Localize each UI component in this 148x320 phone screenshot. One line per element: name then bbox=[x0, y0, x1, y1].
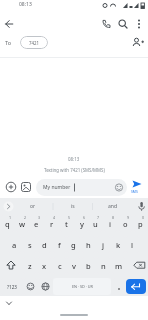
staticText: 3 bbox=[38, 215, 41, 220]
staticText: j bbox=[102, 240, 105, 250]
staticText: 9 bbox=[127, 215, 130, 220]
button[interactable] bbox=[126, 279, 146, 294]
button[interactable]: n bbox=[97, 257, 110, 274]
staticText: q bbox=[5, 219, 10, 229]
button[interactable] bbox=[135, 200, 148, 213]
button[interactable]: j bbox=[97, 236, 110, 253]
staticText: k bbox=[116, 240, 121, 250]
button[interactable]: i bbox=[104, 215, 117, 232]
staticText: v bbox=[72, 261, 76, 271]
staticText: d bbox=[42, 240, 47, 250]
staticText: 1 bbox=[9, 215, 12, 220]
button[interactable]: f bbox=[53, 236, 66, 253]
staticText: and bbox=[108, 203, 117, 210]
staticText: g bbox=[71, 240, 76, 250]
button[interactable] bbox=[2, 200, 15, 213]
button[interactable]: My number bbox=[36, 179, 127, 196]
staticText: p bbox=[138, 219, 143, 229]
button[interactable] bbox=[130, 257, 148, 274]
button[interactable]: l bbox=[126, 236, 139, 253]
staticText: 6 bbox=[83, 215, 86, 220]
staticText: is bbox=[71, 203, 75, 210]
button[interactable] bbox=[3, 298, 15, 308]
staticText: t bbox=[65, 219, 68, 229]
staticText: 0 bbox=[142, 215, 145, 220]
staticText: c bbox=[58, 261, 62, 271]
button[interactable] bbox=[1, 257, 21, 274]
staticText: Texting with 7421 (SMS/MMS) bbox=[44, 167, 105, 173]
staticText: y bbox=[80, 219, 84, 229]
button[interactable]: e bbox=[30, 215, 43, 232]
button[interactable]: z bbox=[23, 257, 36, 274]
staticText: or bbox=[30, 203, 36, 210]
staticText: 08:13 bbox=[19, 1, 32, 8]
button[interactable]: v bbox=[67, 257, 80, 274]
staticText: b bbox=[86, 261, 91, 271]
button[interactable]: t bbox=[60, 215, 73, 232]
button[interactable] bbox=[20, 181, 32, 193]
staticText: 8 bbox=[112, 215, 115, 220]
button[interactable]: p bbox=[134, 215, 147, 232]
button[interactable]: x bbox=[38, 257, 51, 274]
staticText: ?123 bbox=[7, 284, 17, 290]
button[interactable]: m bbox=[112, 257, 125, 274]
staticText: 2 bbox=[24, 215, 27, 220]
button[interactable]: g bbox=[67, 236, 80, 253]
button[interactable]: k bbox=[112, 236, 125, 253]
staticText: a bbox=[12, 240, 17, 250]
staticText: n bbox=[101, 261, 106, 271]
staticText: SMS bbox=[131, 189, 138, 194]
button[interactable]: s bbox=[23, 236, 36, 253]
button[interactable]: y bbox=[75, 215, 88, 232]
button[interactable] bbox=[133, 17, 145, 31]
staticText: 08:13 bbox=[68, 156, 80, 162]
staticText: l bbox=[131, 240, 134, 250]
staticText: x bbox=[42, 261, 47, 271]
staticText: 5 bbox=[68, 215, 71, 220]
button[interactable]: o bbox=[119, 215, 132, 232]
staticText: u bbox=[93, 219, 98, 229]
button[interactable] bbox=[24, 278, 37, 295]
staticText: i bbox=[109, 219, 112, 229]
staticText: To bbox=[5, 39, 12, 46]
staticText: e bbox=[34, 219, 39, 229]
button[interactable] bbox=[128, 178, 146, 197]
button[interactable]: or bbox=[18, 198, 48, 215]
button[interactable]: r bbox=[45, 215, 58, 232]
button[interactable] bbox=[99, 17, 113, 31]
button[interactable]: d bbox=[38, 236, 51, 253]
button[interactable] bbox=[2, 17, 16, 31]
staticText: r bbox=[50, 219, 54, 229]
button[interactable]: is bbox=[58, 198, 88, 215]
staticText: 4 bbox=[53, 215, 56, 220]
staticText: h bbox=[86, 240, 91, 250]
button[interactable] bbox=[39, 278, 52, 295]
staticText: 7 bbox=[97, 215, 100, 220]
button[interactable]: c bbox=[53, 257, 66, 274]
staticText: 7421 bbox=[29, 40, 40, 46]
staticText: My number bbox=[43, 184, 71, 191]
button[interactable]: w bbox=[16, 215, 29, 232]
button[interactable] bbox=[116, 17, 130, 31]
staticText: s bbox=[28, 240, 32, 250]
staticText: z bbox=[28, 261, 32, 271]
staticText: f bbox=[58, 240, 61, 250]
button[interactable]: EN · SD · UR bbox=[53, 278, 111, 295]
button[interactable]: b bbox=[82, 257, 95, 274]
button[interactable]: a bbox=[8, 236, 21, 253]
staticText: w bbox=[19, 219, 26, 229]
button[interactable]: u bbox=[89, 215, 102, 232]
button[interactable]: 7421 bbox=[20, 36, 48, 49]
staticText: o bbox=[123, 219, 128, 229]
button[interactable]: ?123 bbox=[1, 278, 23, 295]
staticText: m bbox=[115, 261, 123, 271]
button[interactable] bbox=[5, 181, 17, 193]
button[interactable] bbox=[113, 278, 125, 295]
button[interactable]: h bbox=[82, 236, 95, 253]
staticText: EN · SD · UR bbox=[72, 284, 93, 289]
button[interactable] bbox=[131, 36, 145, 50]
button[interactable]: and bbox=[97, 198, 127, 215]
button[interactable]: q bbox=[1, 215, 14, 232]
